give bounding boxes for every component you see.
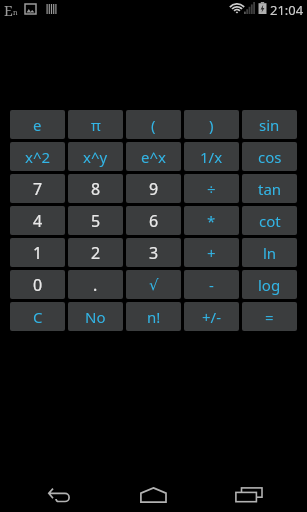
- staticText: No: [85, 307, 106, 327]
- button[interactable]: 1/x: [184, 142, 239, 171]
- button[interactable]: x^2: [10, 142, 65, 171]
- staticText: (: [151, 115, 156, 135]
- button[interactable]: 3: [126, 238, 181, 267]
- staticText: tan: [258, 179, 282, 199]
- staticText: π: [91, 115, 101, 135]
- staticText: =: [265, 307, 274, 327]
- button[interactable]: .: [68, 270, 123, 299]
- staticText: log: [258, 275, 281, 295]
- staticText: 2: [91, 242, 101, 264]
- button[interactable]: ): [184, 110, 239, 139]
- staticText: 0: [33, 274, 43, 296]
- staticText: e: [33, 115, 42, 135]
- button[interactable]: π: [68, 110, 123, 139]
- button[interactable]: log: [242, 270, 297, 299]
- staticText: 5: [91, 210, 101, 232]
- staticText: n!: [147, 307, 161, 327]
- button[interactable]: 5: [68, 206, 123, 235]
- staticText: n: [13, 8, 18, 18]
- button[interactable]: 6: [126, 206, 181, 235]
- button[interactable]: e^x: [126, 142, 181, 171]
- button[interactable]: sin: [242, 110, 297, 139]
- staticText: .: [93, 274, 98, 296]
- button[interactable]: [226, 481, 272, 509]
- button[interactable]: ÷: [184, 174, 239, 203]
- button[interactable]: (: [126, 110, 181, 139]
- staticText: x^y: [83, 147, 108, 167]
- staticText: +: [207, 243, 216, 263]
- staticText: e^x: [141, 147, 166, 167]
- staticText: *: [207, 211, 216, 231]
- button[interactable]: No: [68, 302, 123, 331]
- staticText: E: [4, 1, 13, 20]
- staticText: 9: [149, 178, 159, 200]
- button[interactable]: x^y: [68, 142, 123, 171]
- staticText: 6: [149, 210, 159, 232]
- staticText: 21:04: [270, 1, 304, 19]
- button[interactable]: 8: [68, 174, 123, 203]
- staticText: 7: [33, 178, 43, 200]
- button[interactable]: n!: [126, 302, 181, 331]
- staticText: x^2: [25, 147, 51, 167]
- staticText: 4: [33, 210, 43, 232]
- button[interactable]: 1: [10, 238, 65, 267]
- button[interactable]: [130, 481, 176, 509]
- staticText: cos: [258, 147, 282, 167]
- staticText: +/-: [202, 307, 221, 327]
- button[interactable]: 0: [10, 270, 65, 299]
- button[interactable]: cos: [242, 142, 297, 171]
- staticText: -: [209, 275, 214, 295]
- staticText: cot: [259, 211, 281, 231]
- button[interactable]: *: [184, 206, 239, 235]
- staticText: √: [149, 276, 159, 293]
- staticText: ÷: [207, 179, 216, 199]
- staticText: 3: [149, 242, 159, 264]
- button[interactable]: 2: [68, 238, 123, 267]
- button[interactable]: 4: [10, 206, 65, 235]
- button[interactable]: [38, 481, 84, 509]
- button[interactable]: 7: [10, 174, 65, 203]
- button[interactable]: C: [10, 302, 65, 331]
- button[interactable]: tan: [242, 174, 297, 203]
- staticText: 1/x: [200, 147, 223, 167]
- button[interactable]: cot: [242, 206, 297, 235]
- staticText: 1: [33, 242, 43, 264]
- staticText: ): [209, 115, 214, 135]
- button[interactable]: e: [10, 110, 65, 139]
- button[interactable]: -: [184, 270, 239, 299]
- button[interactable]: =: [242, 302, 297, 331]
- button[interactable]: +: [184, 238, 239, 267]
- staticText: ln: [263, 243, 277, 263]
- staticText: sin: [259, 115, 280, 135]
- staticText: C: [33, 307, 43, 327]
- button[interactable]: 9: [126, 174, 181, 203]
- button[interactable]: +/-: [184, 302, 239, 331]
- button[interactable]: ln: [242, 238, 297, 267]
- staticText: 8: [91, 178, 101, 200]
- button[interactable]: √: [126, 270, 181, 299]
